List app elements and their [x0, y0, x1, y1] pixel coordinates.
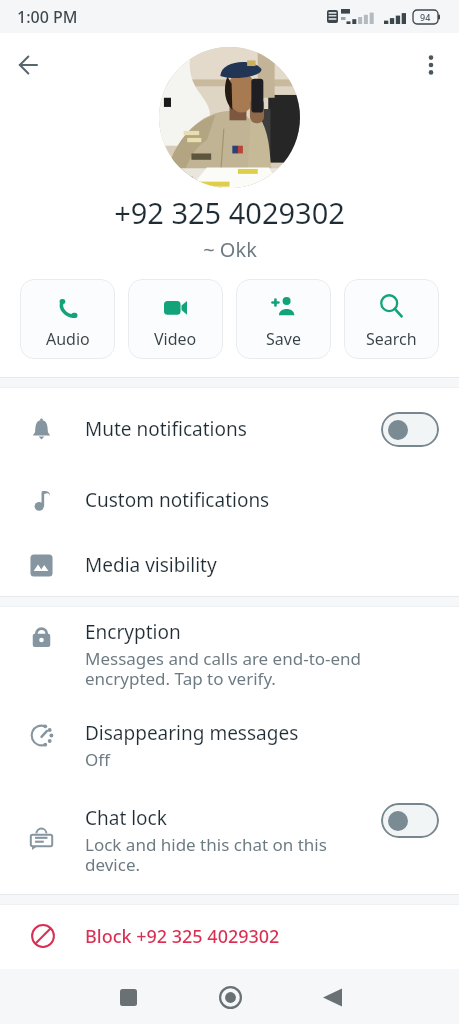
- button[interactable]: Toggle: [381, 803, 439, 838]
- staticText: Mute notifications: [85, 416, 247, 442]
- button[interactable]: Audio: [20, 279, 115, 359]
- staticText: 94: [420, 11, 431, 23]
- button[interactable]: More options: [411, 45, 451, 85]
- staticText: +92 325 4029302: [114, 193, 345, 232]
- button[interactable]: Home: [205, 972, 255, 1022]
- button[interactable]: Video: [128, 279, 223, 359]
- button[interactable]: Block +92 325 4029302: [0, 905, 459, 967]
- button[interactable]: Recent apps: [103, 972, 153, 1022]
- staticText: Save: [266, 328, 301, 350]
- staticText: Block +92 325 4029302: [85, 924, 280, 949]
- button[interactable]: Toggle: [381, 412, 439, 447]
- staticText: Media visibility: [85, 552, 217, 578]
- staticText: Messages and calls are end-to-end encryp…: [85, 647, 362, 690]
- staticText: Search: [366, 328, 417, 350]
- staticText: Lock and hide this chat on this device.: [85, 833, 327, 876]
- staticText: Custom notifications: [85, 487, 270, 513]
- button[interactable]: Mute notifications: [0, 392, 459, 466]
- button[interactable]: Custom notifications: [0, 466, 459, 534]
- button[interactable]: Chat lock: [0, 791, 459, 890]
- staticText: Off: [85, 748, 110, 771]
- button[interactable]: Media visibility: [0, 534, 459, 596]
- button[interactable]: Disappearing messages: [0, 699, 459, 791]
- staticText: Video: [154, 328, 197, 350]
- button[interactable]: Save: [236, 279, 331, 359]
- staticText: 1:00 PM: [17, 6, 78, 28]
- staticText: ~ Okk: [203, 236, 257, 263]
- staticText: Audio: [46, 328, 90, 350]
- button[interactable]: Back: [6, 43, 50, 87]
- staticText: Encryption: [85, 619, 181, 645]
- staticText: Chat lock: [85, 805, 167, 831]
- button[interactable]: Encryption: [0, 609, 459, 699]
- staticText: Disappearing messages: [85, 720, 299, 746]
- button[interactable]: Back: [307, 972, 357, 1022]
- button[interactable]: Search: [344, 279, 439, 359]
